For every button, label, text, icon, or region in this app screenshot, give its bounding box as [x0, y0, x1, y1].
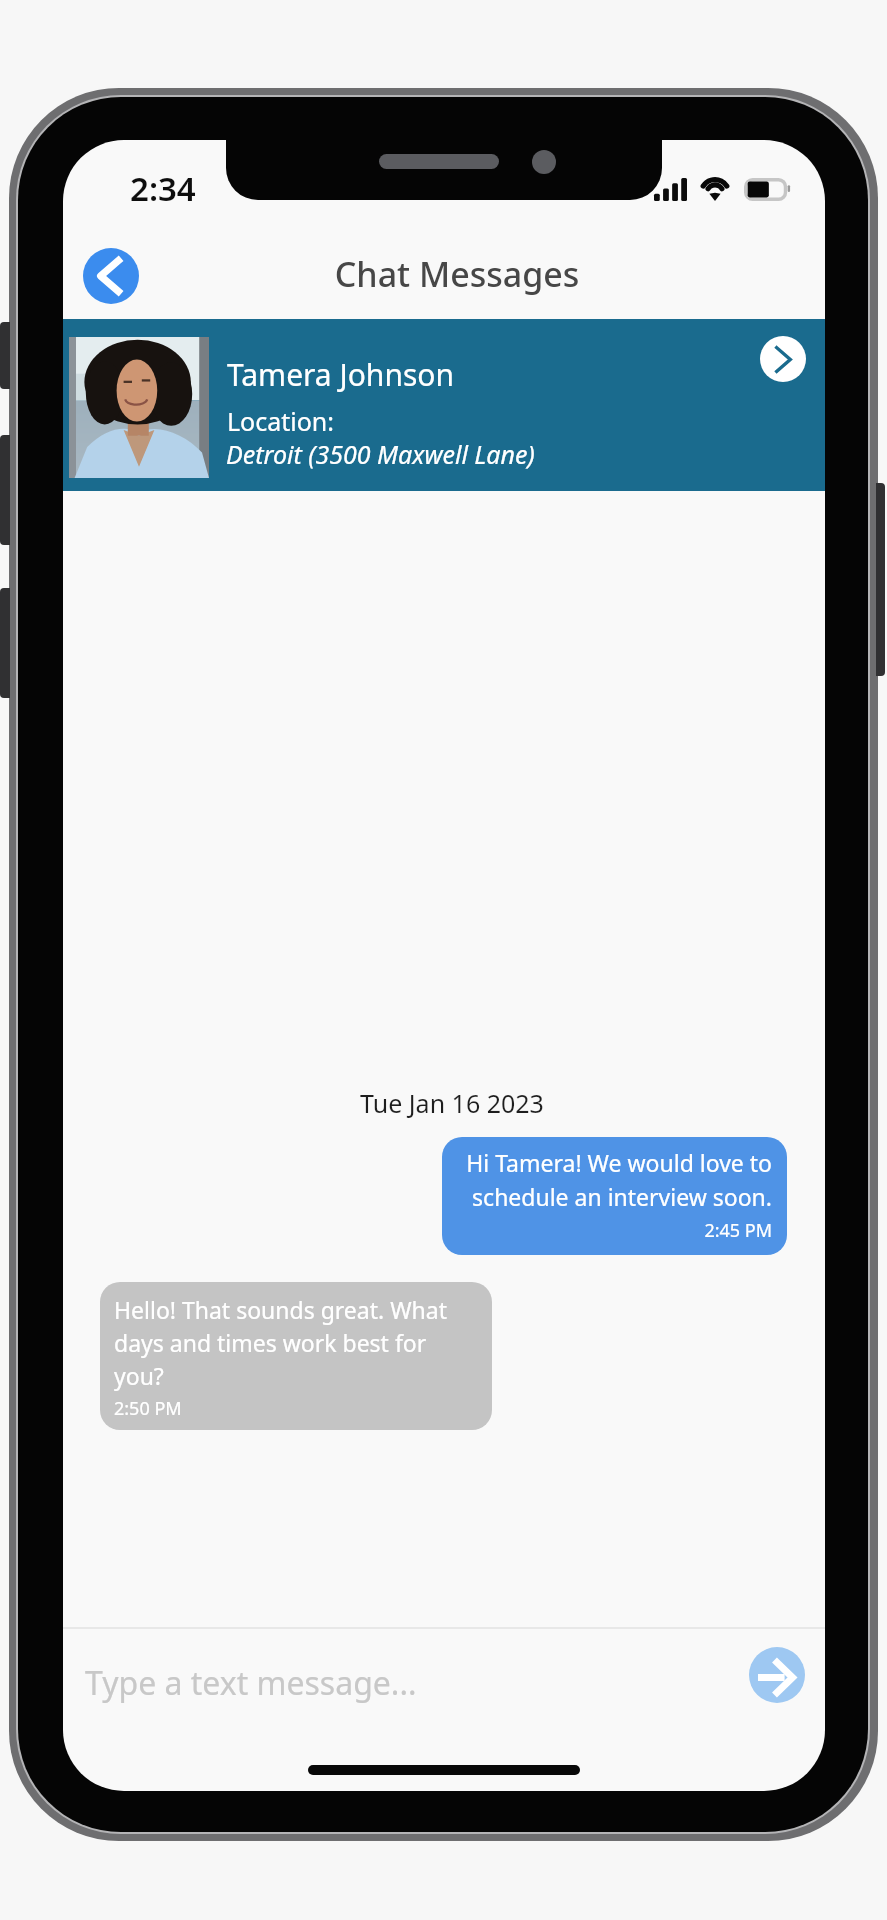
staticText: Tue Jan 16 2023	[71, 1086, 825, 1120]
staticText: Detroit (3500 Maxwell Lane)	[226, 437, 535, 471]
staticText: Location:	[227, 404, 335, 438]
staticText: Hi Tamera! We would love to schedule an …	[457, 1147, 772, 1212]
staticText: 2:45 PM	[457, 1218, 772, 1243]
staticText: Chat Messages	[76, 251, 825, 297]
staticText: 2:50 PM	[114, 1396, 182, 1421]
button[interactable]: Send	[749, 1647, 805, 1703]
button[interactable]: Hi Tamera! We would love to schedule an …	[442, 1137, 787, 1255]
staticText: 2:34	[130, 166, 196, 211]
button[interactable]: Hello! That sounds great. What days and …	[100, 1282, 492, 1430]
button[interactable]: Back	[83, 248, 139, 304]
button[interactable]	[63, 1629, 825, 1741]
staticText: Tamera Johnson	[227, 354, 454, 395]
button[interactable]: Tamera Johnson	[63, 319, 825, 491]
button[interactable]: Open contact details	[760, 336, 806, 382]
staticText: Hello! That sounds great. What days and …	[114, 1294, 478, 1392]
staticText: Type a text message...	[85, 1661, 417, 1705]
